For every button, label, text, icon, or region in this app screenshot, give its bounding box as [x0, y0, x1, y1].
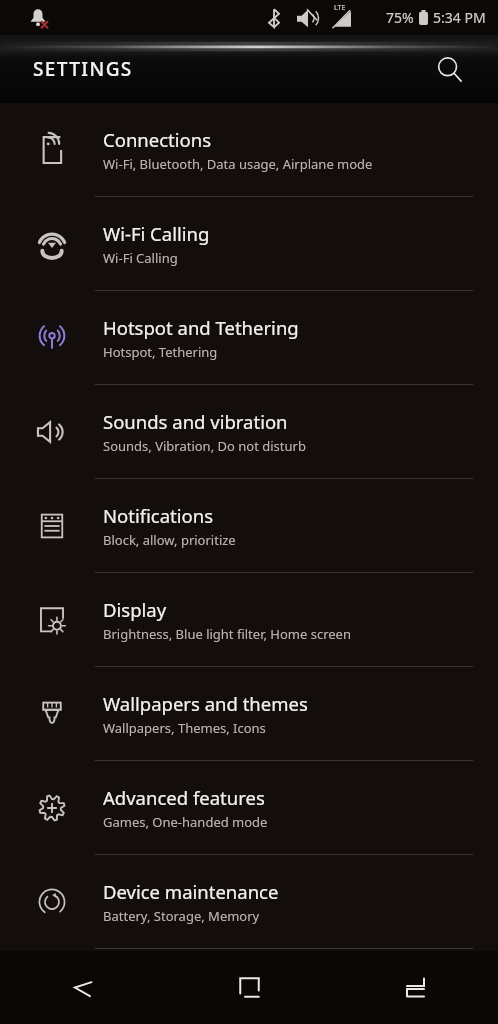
button[interactable]: Connections: [0, 103, 498, 197]
staticText: Hotspot and Tethering: [103, 315, 299, 340]
staticText: Hotspot, Tethering: [103, 343, 218, 361]
button[interactable]: Recents: [332, 951, 498, 1024]
staticText: Brightness, Blue light filter, Home scre…: [103, 625, 351, 643]
staticText: Display: [103, 597, 167, 622]
staticText: Wi-Fi Calling: [103, 221, 210, 246]
button[interactable]: Wi-Fi Calling: [0, 197, 498, 291]
staticText: Sounds and vibration: [103, 409, 288, 434]
button[interactable]: Device maintenance: [0, 855, 498, 949]
button[interactable]: Wallpapers and themes: [0, 667, 498, 761]
button[interactable]: Back: [0, 951, 166, 1024]
staticText: Advanced features: [103, 785, 265, 810]
button[interactable]: Sounds and vibration: [0, 385, 498, 479]
staticText: Sounds, Vibration, Do not disturb: [103, 437, 306, 455]
button[interactable]: Advanced features: [0, 761, 498, 855]
button[interactable]: Notifications: [0, 479, 498, 573]
button[interactable]: Hotspot and Tethering: [0, 291, 498, 385]
staticText: 5:34 PM: [433, 8, 486, 27]
staticText: Wi-Fi, Bluetooth, Data usage, Airplane m…: [103, 155, 373, 173]
staticText: Games, One-handed mode: [103, 813, 268, 831]
staticText: Notifications: [103, 503, 214, 528]
staticText: LTE: [334, 3, 346, 13]
staticText: Battery, Storage, Memory: [103, 907, 260, 925]
staticText: Wallpapers, Themes, Icons: [103, 719, 266, 737]
staticText: Device maintenance: [103, 879, 279, 904]
staticText: Wallpapers and themes: [103, 691, 308, 716]
staticText: Block, allow, prioritize: [103, 531, 236, 549]
staticText: 75%: [386, 8, 414, 27]
staticText: Wi-Fi Calling: [103, 249, 178, 267]
staticText: Connections: [103, 127, 212, 152]
staticText: SETTINGS: [33, 56, 133, 82]
button[interactable]: Home: [166, 951, 332, 1024]
button[interactable]: Search: [426, 46, 472, 92]
button[interactable]: Display: [0, 573, 498, 667]
